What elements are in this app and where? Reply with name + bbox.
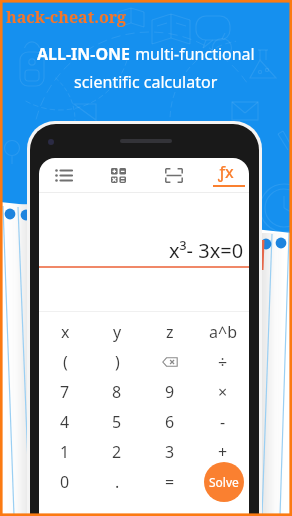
- button[interactable]: ×: [196, 377, 249, 407]
- button[interactable]: 2: [91, 437, 143, 467]
- button[interactable]: =: [143, 467, 196, 497]
- button[interactable]: +: [196, 437, 249, 467]
- button[interactable]: [143, 347, 196, 377]
- staticText: ): [115, 351, 120, 373]
- button[interactable]: 7: [39, 377, 91, 407]
- button[interactable]: z: [143, 317, 196, 347]
- button[interactable]: Functions: [201, 158, 246, 192]
- button[interactable]: 8: [91, 377, 143, 407]
- button[interactable]: x: [39, 317, 91, 347]
- staticText: 1: [60, 441, 70, 463]
- button[interactable]: y: [91, 317, 143, 347]
- button[interactable]: ÷: [196, 347, 249, 377]
- button[interactable]: a^b: [196, 317, 249, 347]
- button[interactable]: Keypad: [91, 158, 146, 192]
- button[interactable]: 1: [39, 437, 91, 467]
- staticText: scientific calculator: [74, 71, 218, 93]
- button[interactable]: .: [91, 467, 143, 497]
- button[interactable]: 5: [91, 407, 143, 437]
- staticText: x³- 3x=0: [169, 237, 244, 264]
- button[interactable]: x³- 3x=0: [39, 193, 249, 268]
- button[interactable]: 6: [143, 407, 196, 437]
- staticText: .: [115, 471, 120, 493]
- staticText: 2: [112, 441, 122, 463]
- button[interactable]: ): [91, 347, 143, 377]
- staticText: ÷: [218, 351, 228, 373]
- staticText: multi-functional: [131, 43, 255, 65]
- button[interactable]: 0: [39, 467, 91, 497]
- staticText: 9: [165, 381, 175, 403]
- button[interactable]: 9: [143, 377, 196, 407]
- staticText: 3: [165, 441, 175, 463]
- staticText: +: [218, 441, 228, 463]
- button[interactable]: Solve: [204, 462, 244, 502]
- staticText: a^b: [209, 321, 237, 343]
- staticText: 8: [112, 381, 122, 403]
- button[interactable]: -: [196, 407, 249, 437]
- staticText: hack-cheat.org: [6, 6, 127, 28]
- staticText: Solve: [209, 474, 239, 490]
- button[interactable]: (: [39, 347, 91, 377]
- button[interactable]: 3: [143, 437, 196, 467]
- staticText: 0: [60, 471, 70, 493]
- staticText: x: [61, 321, 70, 343]
- staticText: -: [220, 411, 226, 433]
- button[interactable]: 4: [39, 407, 91, 437]
- button[interactable]: List view: [39, 158, 91, 192]
- button[interactable]: Scan equation: [146, 158, 201, 192]
- staticText: z: [166, 321, 174, 343]
- staticText: 5: [112, 411, 122, 433]
- button[interactable]: [196, 467, 249, 497]
- staticText: 7: [60, 381, 70, 403]
- staticText: =: [165, 471, 175, 493]
- staticText: (: [63, 351, 68, 373]
- staticText: ALL-IN-ONE: [37, 43, 131, 65]
- staticText: ƒx: [218, 161, 234, 183]
- staticText: 6: [165, 411, 175, 433]
- staticText: 4: [60, 411, 70, 433]
- staticText: ×: [218, 381, 228, 403]
- staticText: y: [113, 321, 122, 343]
